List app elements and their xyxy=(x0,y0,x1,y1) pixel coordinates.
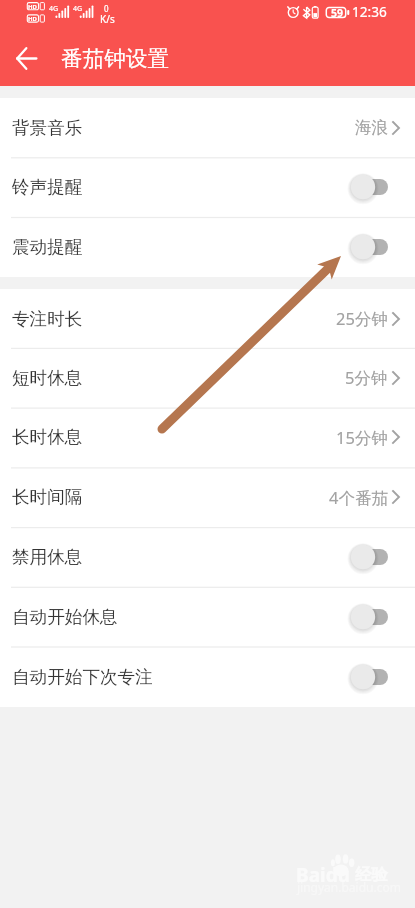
staticText: 铃声提醒 xyxy=(12,176,83,198)
staticText: Baidu xyxy=(296,862,351,888)
staticText: 番茄钟设置 xyxy=(61,45,169,72)
staticText: K/s xyxy=(100,12,115,26)
staticText: 4G xyxy=(49,4,59,14)
staticText: 短时休息 xyxy=(12,367,83,389)
button[interactable]: 长时休息 xyxy=(0,407,415,467)
staticText: 4G xyxy=(73,4,83,14)
button[interactable]: Back xyxy=(6,38,46,78)
button[interactable]: 铃声提醒 xyxy=(0,157,415,217)
button[interactable]: 震动提醒 xyxy=(0,217,415,277)
staticText: 自动开始休息 xyxy=(12,606,118,628)
staticText: 专注时长 xyxy=(12,308,83,330)
staticText: 0 xyxy=(104,3,109,14)
button[interactable]: 禁用休息 xyxy=(0,527,415,587)
button[interactable]: 自动开始下次专注 xyxy=(0,647,415,707)
staticText: 25分钟 xyxy=(336,307,388,330)
button[interactable]: 专注时长 xyxy=(0,289,415,348)
button[interactable]: 铃声提醒 开关 xyxy=(350,173,388,201)
staticText: 长时休息 xyxy=(12,426,83,448)
staticText: 5分钟 xyxy=(345,366,388,389)
button[interactable]: 自动开始休息 开关 xyxy=(350,603,388,631)
button[interactable]: 长时间隔 xyxy=(0,467,415,527)
staticText: 15分钟 xyxy=(336,426,388,449)
staticText: HD xyxy=(28,15,37,23)
button[interactable]: 禁用休息 开关 xyxy=(350,543,388,571)
button[interactable]: 背景音乐 xyxy=(0,98,415,157)
staticText: 4个番茄 xyxy=(329,486,388,509)
button[interactable]: 自动开始下次专注 开关 xyxy=(350,663,388,691)
staticText: 禁用休息 xyxy=(12,546,83,568)
staticText: 自动开始下次专注 xyxy=(12,666,153,688)
staticText: HD xyxy=(28,3,37,11)
staticText: 12:36 xyxy=(352,2,387,21)
staticText: 背景音乐 xyxy=(12,117,83,139)
staticText: 长时间隔 xyxy=(12,486,83,508)
button[interactable]: 自动开始休息 xyxy=(0,587,415,647)
staticText: 震动提醒 xyxy=(12,236,83,258)
staticText: 59 xyxy=(331,6,344,20)
button[interactable]: 震动提醒 开关 xyxy=(350,233,388,261)
staticText: 海浪 xyxy=(355,117,388,138)
button[interactable]: 短时休息 xyxy=(0,348,415,407)
staticText: 经验 xyxy=(355,864,388,885)
